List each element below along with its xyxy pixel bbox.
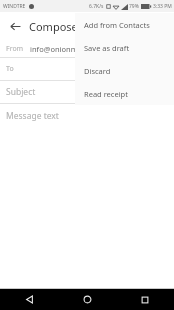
staticText: From bbox=[6, 44, 24, 54]
staticText: To bbox=[6, 64, 14, 74]
staticText: Read receipt bbox=[84, 89, 128, 99]
staticText: info@onionmail.org bbox=[30, 44, 100, 54]
staticText: 6.7K/s bbox=[89, 3, 104, 10]
staticText: Discard bbox=[84, 66, 111, 76]
staticText: Message text bbox=[6, 110, 59, 122]
button[interactable]: Message text bbox=[0, 104, 174, 274]
staticText: Add from Contacts bbox=[84, 20, 150, 30]
button[interactable]: Back bbox=[0, 289, 58, 310]
staticText: 3:33 PM bbox=[153, 3, 172, 10]
button[interactable]: Read receipt bbox=[75, 82, 174, 105]
button[interactable]: Recent apps bbox=[116, 289, 174, 310]
button[interactable]: Back bbox=[4, 15, 26, 37]
button[interactable]: Discard bbox=[75, 59, 174, 82]
button[interactable]: To bbox=[0, 58, 174, 80]
button[interactable]: Home bbox=[58, 289, 116, 310]
staticText: 79% bbox=[129, 3, 139, 10]
staticText: Save as draft bbox=[84, 43, 130, 53]
button[interactable]: Add from Contacts bbox=[75, 13, 174, 36]
button[interactable]: Save as draft bbox=[75, 36, 174, 59]
staticText: Compose bbox=[29, 19, 78, 34]
button[interactable]: Subject bbox=[0, 81, 174, 103]
button[interactable]: From bbox=[0, 40, 174, 57]
staticText: Subject bbox=[6, 86, 36, 98]
staticText: WINDTRE bbox=[3, 3, 26, 10]
